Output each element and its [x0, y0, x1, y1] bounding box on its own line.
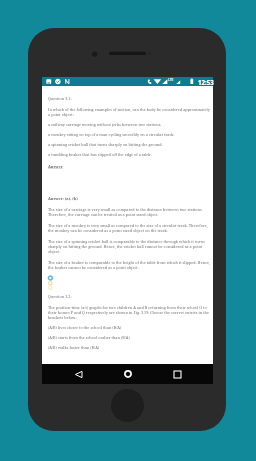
button[interactable]: Recent apps: [167, 364, 188, 384]
staticText: Question 3.1:: [48, 96, 72, 101]
staticText: In which of the following examples of mo…: [48, 107, 212, 117]
staticText: 12:53: [198, 78, 214, 86]
staticText: The position-time (x-t) graphs for two c…: [48, 305, 212, 320]
staticText: The size of a monkey is very small as co…: [48, 223, 212, 233]
staticText: (A/B) walks faster than (B/A): [48, 345, 100, 350]
staticText: LTE: [168, 77, 174, 81]
staticText: (A/B) starts from the school earlier tha…: [48, 335, 130, 340]
button[interactable]: Home: [117, 364, 138, 384]
staticText: Question 3.2:: [48, 294, 72, 299]
button[interactable]: Home button: [111, 389, 144, 422]
staticText: a railway carriage moving without jerks …: [48, 122, 162, 127]
staticText: a spinning cricket ball that turns sharp…: [48, 142, 163, 147]
staticText: The size of a spinning cricket ball is c…: [48, 239, 212, 254]
staticText: Answer: (a), (b): [48, 196, 78, 201]
staticText: The size of a carriage is very small as …: [48, 207, 212, 217]
staticText: a monkey sitting on top of a man cycling…: [48, 132, 175, 137]
staticText: a tumbling beaker that has slipped off t…: [48, 152, 152, 157]
button[interactable]: Back: [68, 364, 89, 384]
staticText: The size of a beaker is comparable to th…: [48, 260, 212, 270]
staticText: Answer: [48, 164, 63, 169]
staticText: (A/B) lives closer to the school than (B…: [48, 325, 122, 330]
